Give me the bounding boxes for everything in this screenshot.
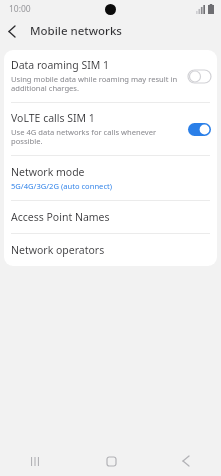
button[interactable]: Network mode xyxy=(4,156,217,200)
staticText: 10:00 xyxy=(9,3,31,15)
staticText: Network mode xyxy=(11,165,85,179)
staticText: Access Point Names xyxy=(11,210,110,224)
button[interactable]: Network operators xyxy=(4,234,217,266)
button[interactable]: VoLTE calls SIM 1 xyxy=(4,103,217,155)
staticText: 5G/4G/3G/2G (auto connect) xyxy=(11,181,113,191)
staticText: Mobile networks xyxy=(30,23,122,39)
staticText: Using mobile data while roaming may resu… xyxy=(11,74,178,94)
button[interactable]: Recent apps xyxy=(22,448,48,474)
button[interactable]: Data roaming SIM 1 xyxy=(4,50,217,102)
staticText: VoLTE calls SIM 1 xyxy=(11,111,95,125)
button[interactable]: Home xyxy=(98,448,124,474)
button[interactable]: Navigate up xyxy=(0,19,24,43)
button[interactable]: Access Point Names xyxy=(4,201,217,233)
button[interactable]: On xyxy=(187,122,211,136)
staticText: Data roaming SIM 1 xyxy=(11,58,110,72)
button[interactable]: Off xyxy=(187,69,211,83)
staticText: Use 4G data networks for calls whenever … xyxy=(11,127,183,147)
staticText: Network operators xyxy=(11,243,105,257)
button[interactable]: Back xyxy=(173,448,199,474)
